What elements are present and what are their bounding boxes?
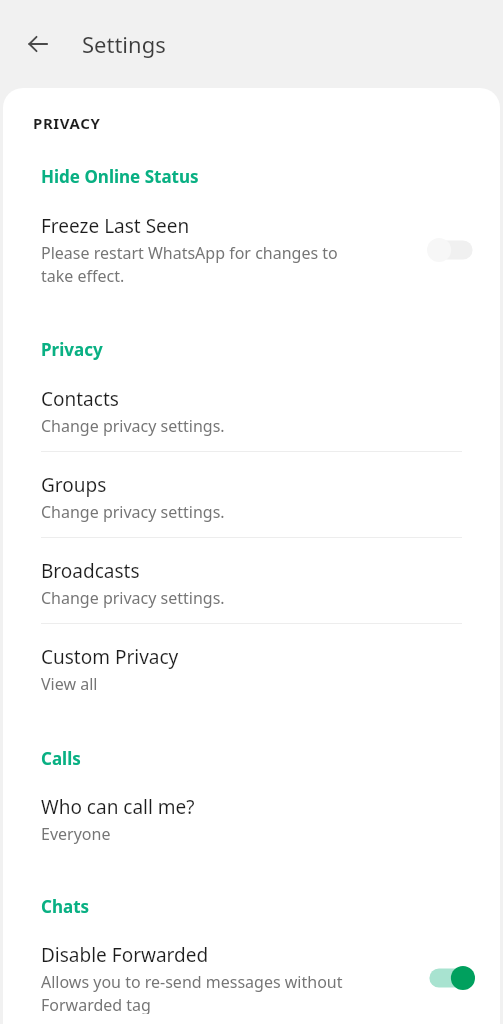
button[interactable]: Who can call me? — [3, 792, 500, 859]
staticText: Change privacy settings. — [41, 415, 225, 437]
button[interactable]: Back — [14, 20, 62, 68]
staticText: Change privacy settings. — [41, 587, 225, 609]
staticText: PRIVACY — [33, 113, 101, 133]
staticText: Disable Forwarded — [41, 942, 209, 968]
staticText: Please restart WhatsApp for changes to t… — [41, 242, 338, 287]
staticText: Everyone — [41, 823, 111, 845]
button[interactable]: Toggle on — [424, 961, 478, 995]
staticText: Custom Privacy — [41, 644, 179, 670]
button[interactable]: Groups — [3, 470, 500, 537]
staticText: Contacts — [41, 386, 119, 412]
staticText: Allows you to re-send messages without F… — [41, 971, 343, 1014]
staticText: Broadcasts — [41, 558, 140, 584]
button[interactable]: Contacts — [3, 384, 500, 451]
staticText: Privacy — [41, 338, 103, 361]
staticText: Freeze Last Seen — [41, 213, 190, 239]
staticText: Chats — [41, 895, 90, 918]
button[interactable]: Broadcasts — [3, 556, 500, 623]
staticText: Who can call me? — [41, 794, 195, 820]
staticText: Change privacy settings. — [41, 501, 225, 523]
staticText: Settings — [82, 29, 166, 59]
staticText: Hide Online Status — [41, 165, 199, 188]
staticText: View all — [41, 673, 98, 695]
button[interactable]: Custom Privacy — [3, 642, 500, 709]
staticText: Calls — [41, 747, 81, 770]
button[interactable]: Toggle off — [424, 233, 478, 267]
button[interactable]: Freeze Last Seen — [3, 211, 500, 297]
staticText: Groups — [41, 472, 107, 498]
button[interactable]: Disable Forwarded — [3, 940, 500, 1024]
